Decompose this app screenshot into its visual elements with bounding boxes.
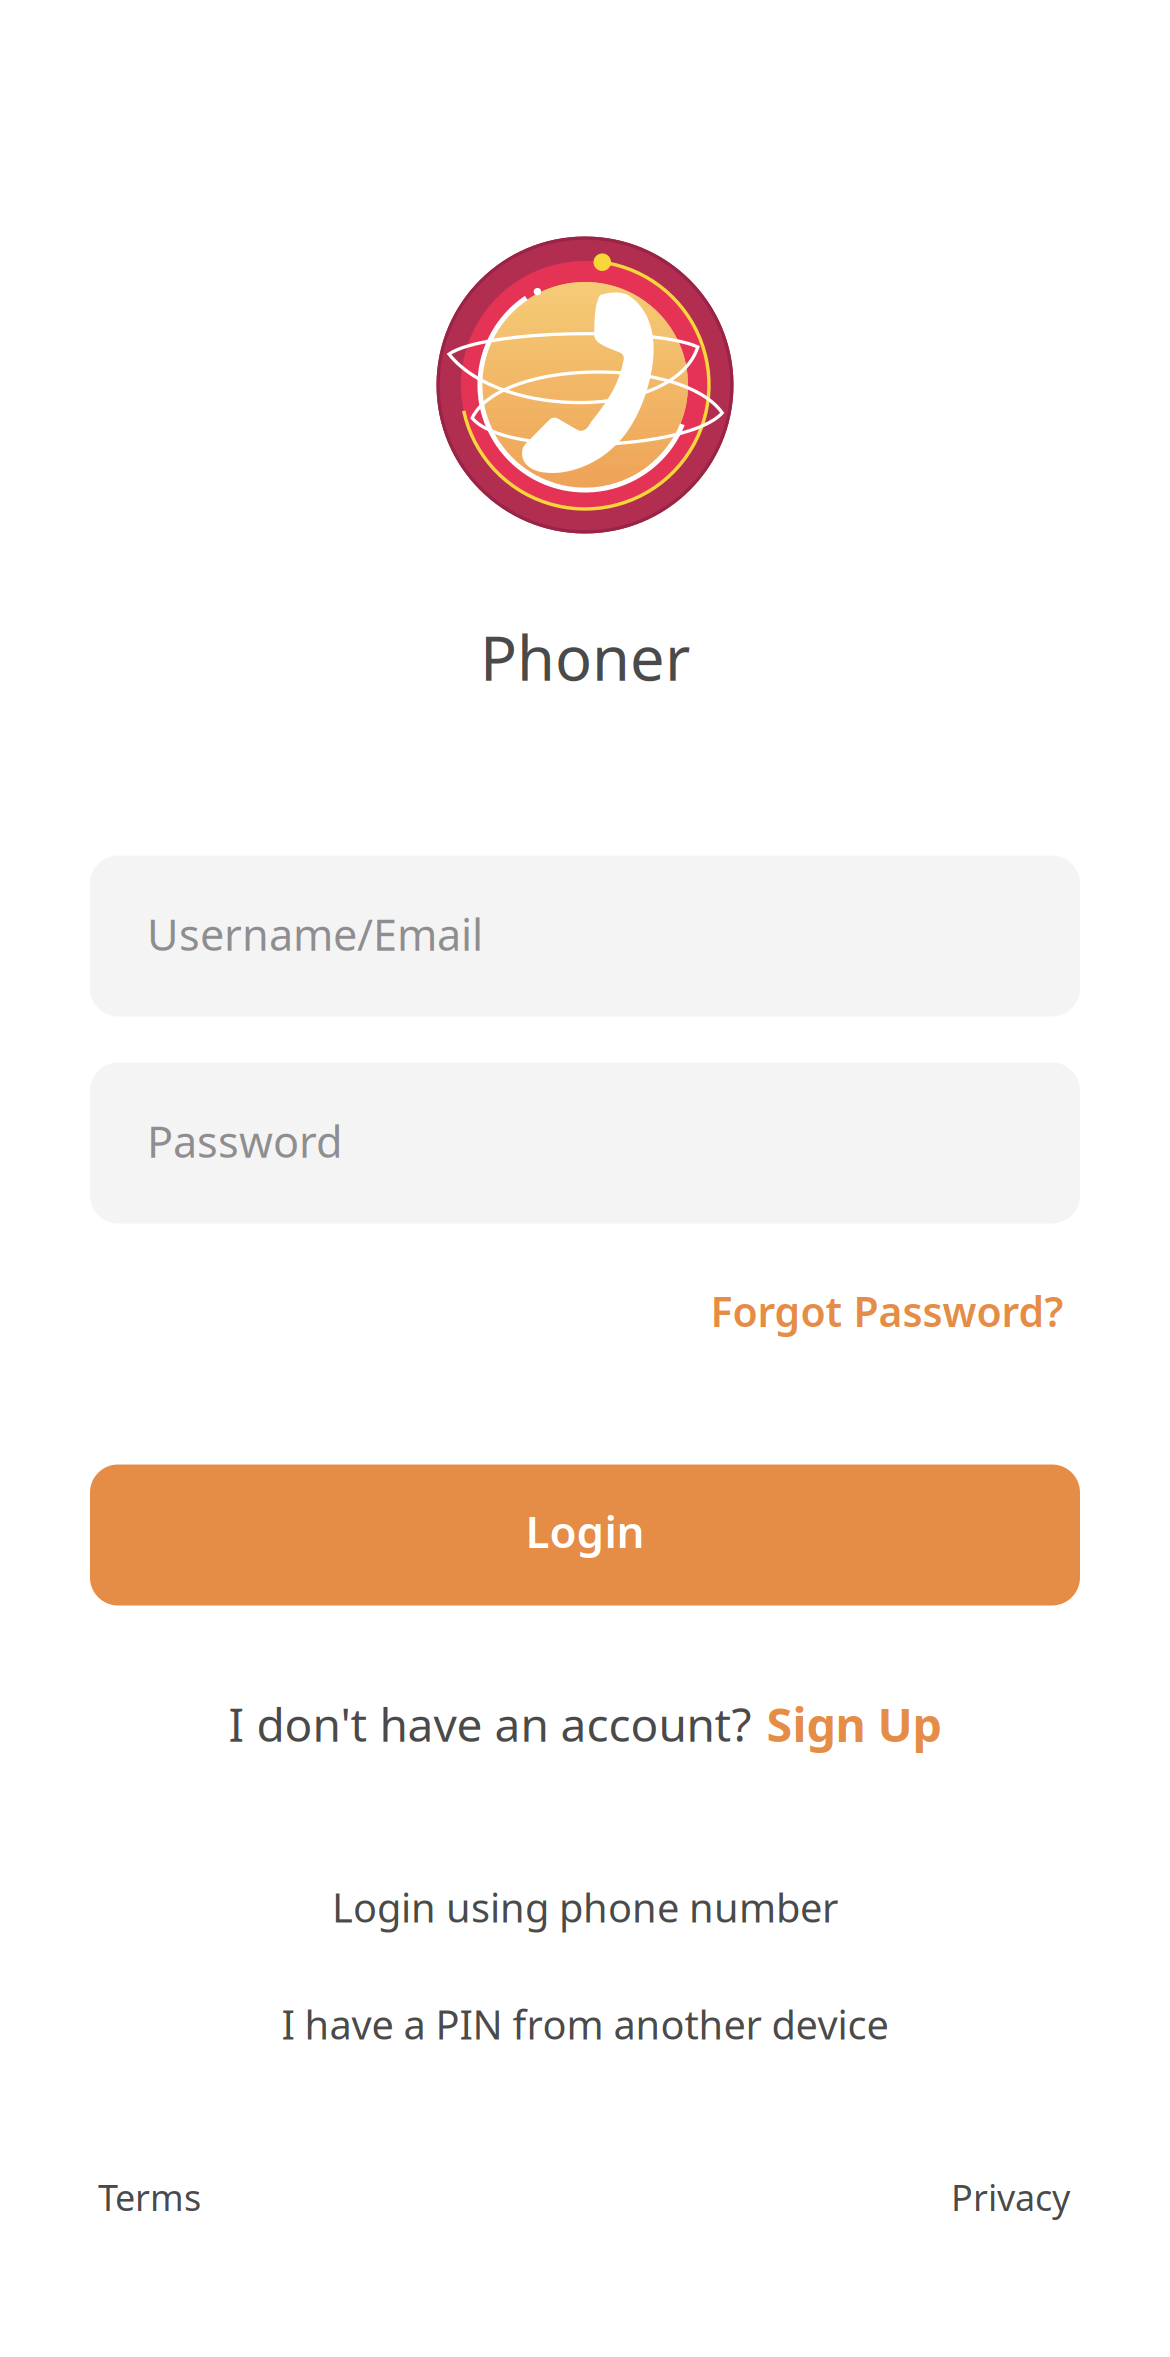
staticText: Privacy bbox=[951, 2172, 1070, 2221]
button[interactable]: Privacy bbox=[910, 2162, 1070, 2232]
button[interactable]: Username/Email bbox=[90, 855, 1080, 1016]
button[interactable]: Terms bbox=[98, 2162, 258, 2232]
button[interactable]: Login bbox=[90, 1464, 1080, 1605]
button[interactable]: Login using phone number bbox=[305, 1864, 865, 1950]
staticText: Phoner bbox=[480, 615, 690, 699]
staticText: Password bbox=[147, 1112, 343, 1170]
button[interactable]: I don't have an account? bbox=[205, 1679, 965, 1769]
staticText: I have a PIN from another device bbox=[281, 1997, 888, 2051]
staticText: Username/Email bbox=[147, 905, 483, 963]
staticText: I don't have an account? bbox=[228, 1693, 751, 1755]
staticText: Login using phone number bbox=[332, 1880, 838, 1934]
button[interactable]: I have a PIN from another device bbox=[255, 1981, 915, 2067]
staticText: Login bbox=[525, 1501, 644, 1561]
staticText: Terms bbox=[98, 2172, 201, 2221]
staticText: Sign Up bbox=[766, 1692, 941, 1756]
button[interactable]: Forgot Password? bbox=[663, 1256, 1110, 1384]
staticText: Forgot Password? bbox=[710, 1283, 1063, 1339]
button[interactable]: Password bbox=[90, 1062, 1080, 1223]
